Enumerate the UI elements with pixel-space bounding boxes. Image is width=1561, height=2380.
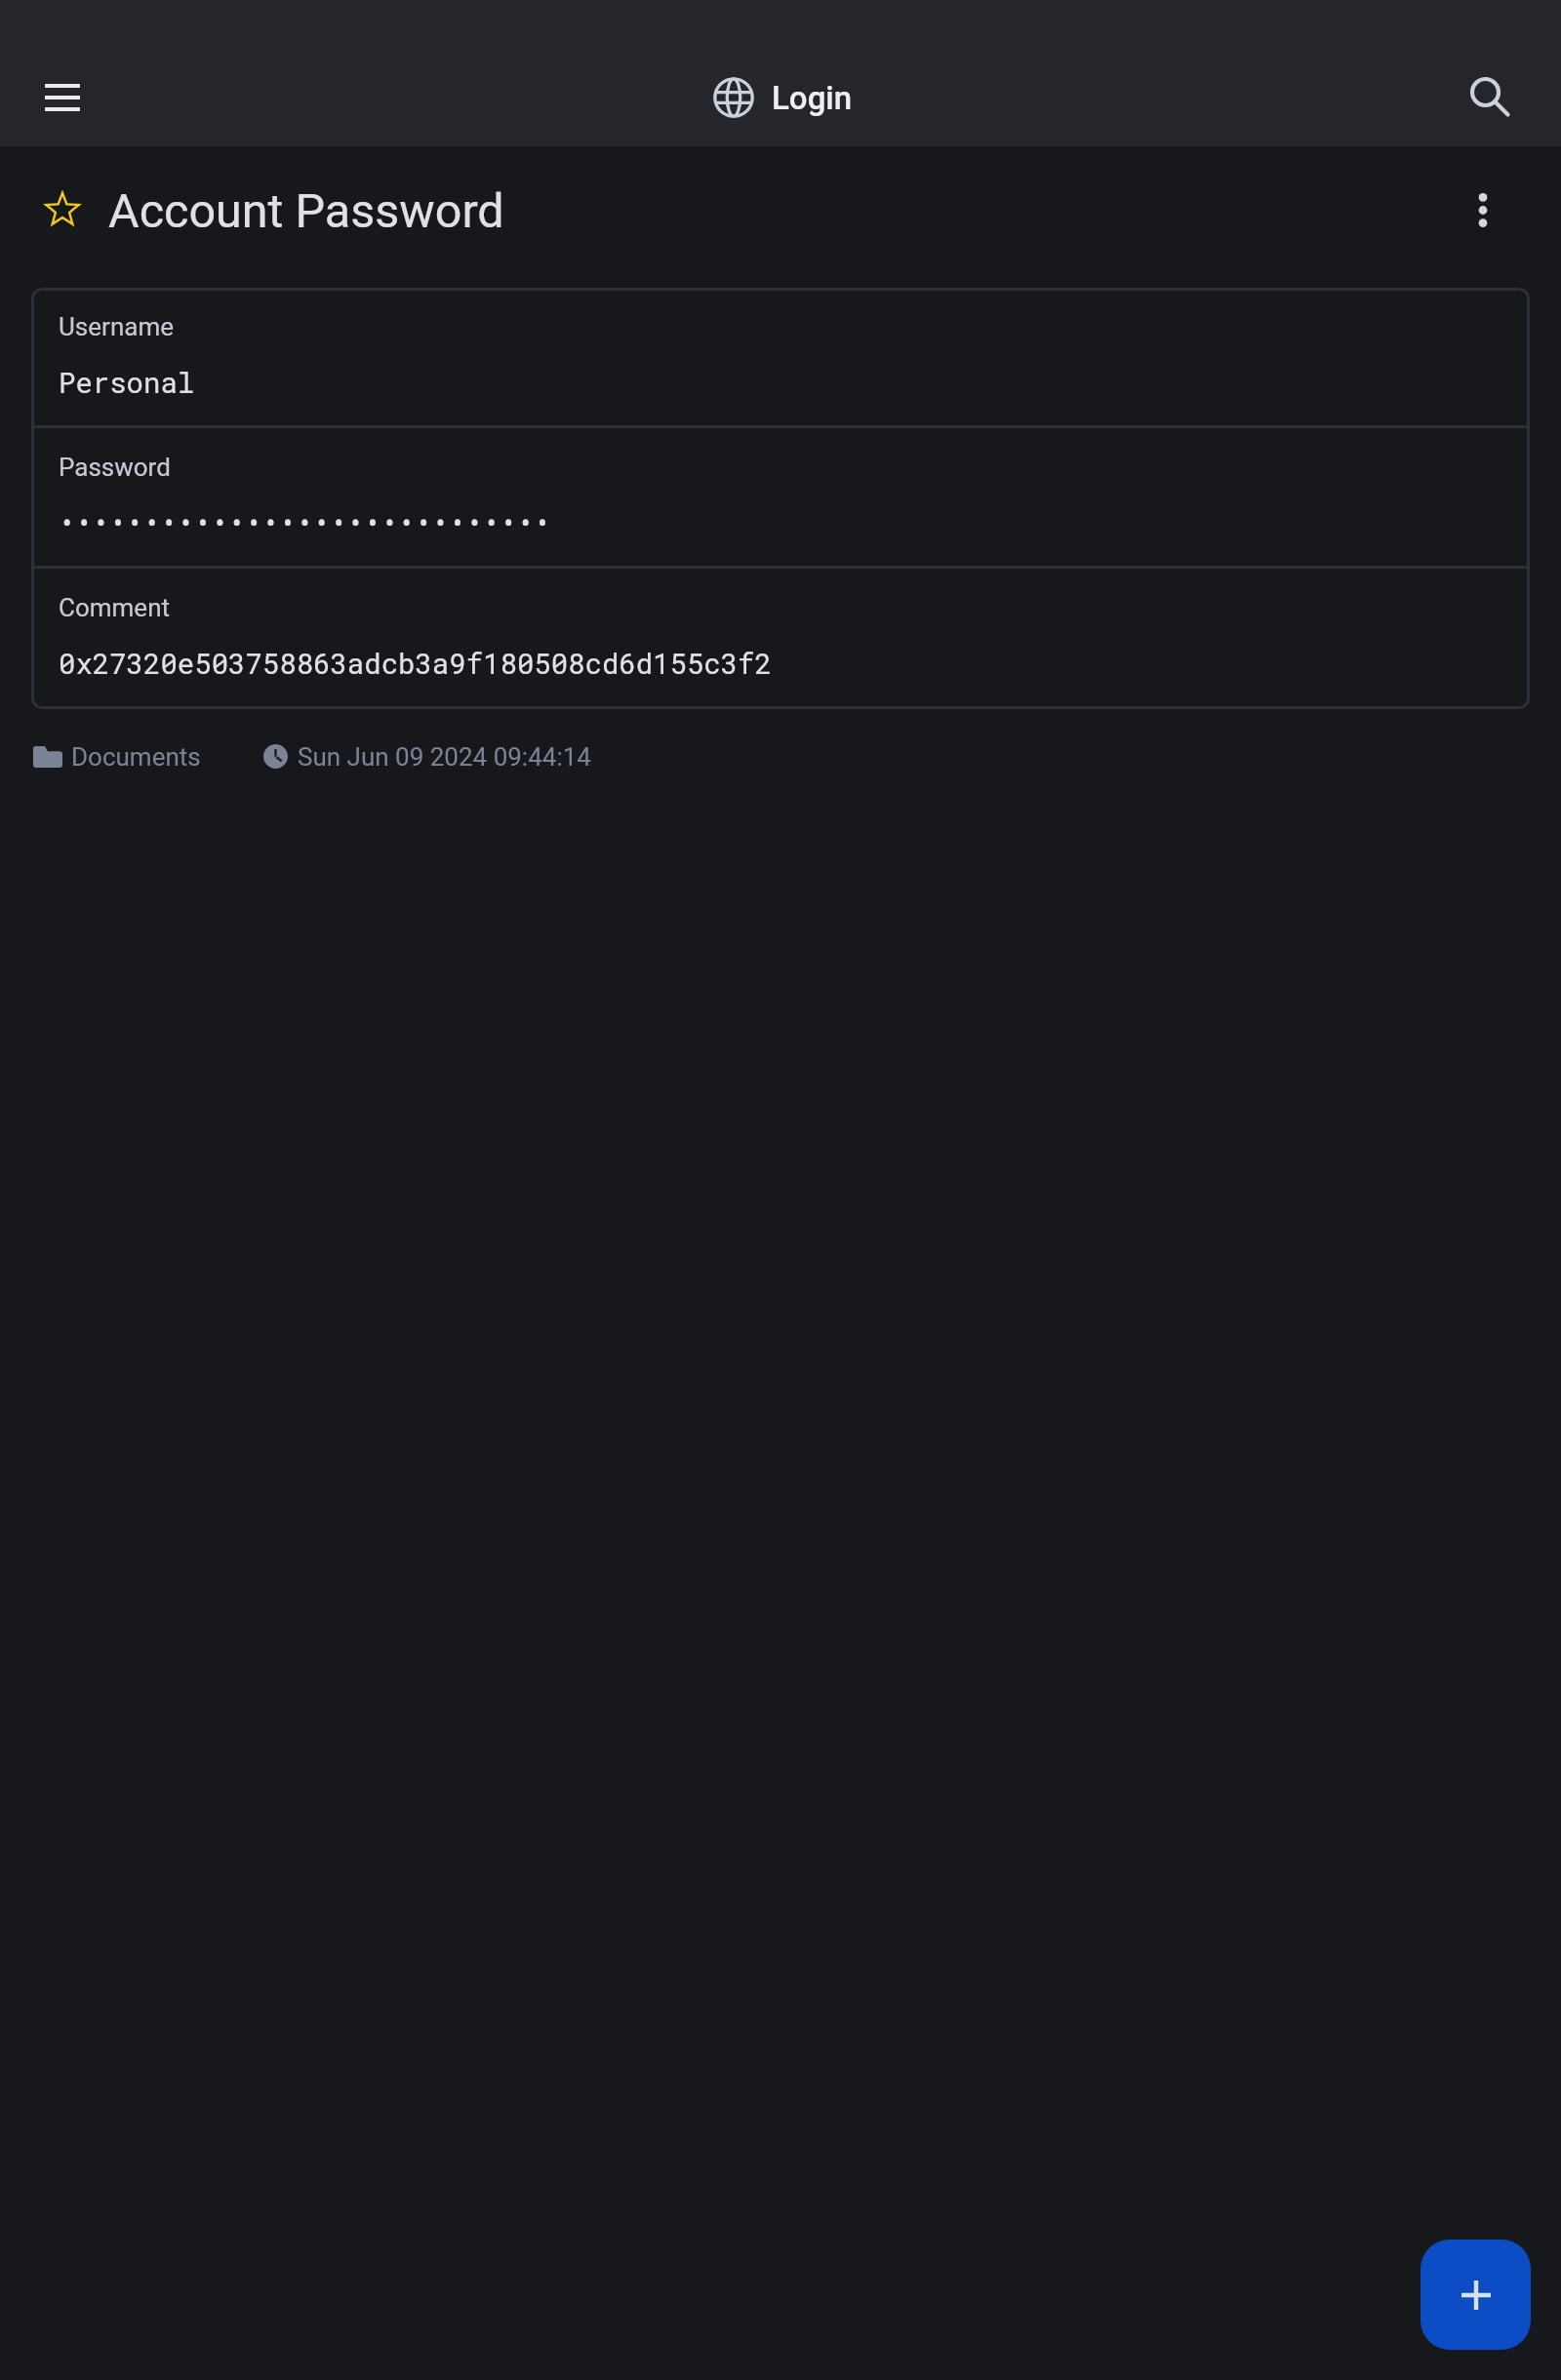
staticText: Documents: [71, 742, 201, 772]
staticText: 0x27320e503758863adcb3a9f180508cd6d155c3…: [59, 645, 772, 682]
staticText: Login: [772, 79, 853, 117]
button[interactable]: More options: [1440, 159, 1526, 260]
staticText: Personal: [59, 364, 195, 401]
staticText: Account Password: [108, 183, 504, 239]
button[interactable]: Favourite: [20, 161, 88, 229]
button[interactable]: Menu: [18, 45, 107, 150]
staticText: Comment: [59, 593, 171, 622]
button[interactable]: Comment: [31, 569, 1530, 709]
staticText: Sun Jun 09 2024 09:44:14: [298, 742, 591, 772]
button[interactable]: Add entry: [1421, 2240, 1531, 2350]
button[interactable]: Password: [31, 428, 1530, 566]
staticText: Password: [59, 453, 171, 482]
staticText: Username: [59, 312, 174, 341]
staticText: •••••••••••••••••••••••••••••: [59, 504, 551, 541]
button[interactable]: Search: [1446, 45, 1547, 150]
button[interactable]: Username: [31, 288, 1530, 425]
